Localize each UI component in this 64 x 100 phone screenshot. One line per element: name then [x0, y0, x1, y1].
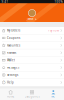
staticText: My Orders: [7, 29, 20, 32]
button[interactable]: Messages: [0, 64, 64, 71]
staticText: Home: [7, 95, 15, 98]
button[interactable]: Reviews: [0, 49, 64, 57]
staticText: Wallet: [7, 58, 15, 62]
staticText: Coupons: [7, 36, 20, 40]
button[interactable]: My Orders: [0, 27, 64, 34]
staticText: Favourites: [7, 44, 20, 47]
button[interactable]: Wallet: [0, 57, 64, 64]
staticText: Messages: [7, 66, 19, 69]
button[interactable]: ?: [0, 79, 64, 86]
button[interactable]: Me: [43, 88, 64, 100]
staticText: Jamie L.: [27, 17, 37, 21]
button[interactable]: Home: [0, 88, 21, 100]
staticText: 9:41: [1, 0, 8, 3]
staticText: Reviews: [7, 51, 16, 54]
button[interactable]: Favourites: [0, 42, 64, 49]
staticText: 100%: [55, 0, 63, 3]
button[interactable]: Settings: [0, 71, 64, 79]
button[interactable]: Coupons: [0, 34, 64, 42]
staticText: Help: [7, 81, 14, 84]
staticText: ?: [3, 81, 4, 84]
staticText: Categories: [24, 95, 39, 98]
staticText: Pay now: [48, 29, 59, 32]
staticText: Me: [51, 95, 55, 98]
staticText: Settings: [7, 73, 18, 77]
button[interactable]: Categories: [21, 88, 43, 100]
